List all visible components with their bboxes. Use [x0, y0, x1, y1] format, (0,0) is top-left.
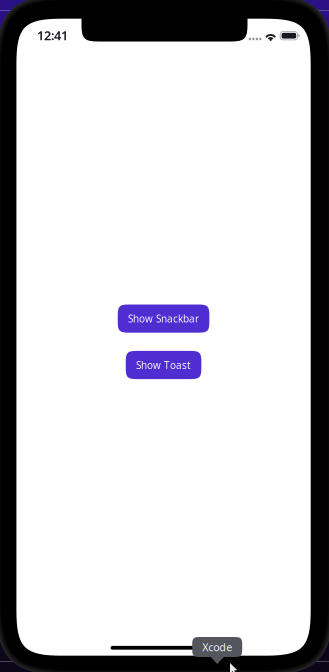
staticText: Show Snackbar	[128, 312, 199, 325]
staticText: 12:41	[37, 27, 68, 44]
staticText: Show Toast	[136, 358, 191, 372]
staticText: Xcode	[202, 640, 232, 654]
button[interactable]: Show Toast	[126, 351, 201, 379]
button[interactable]: Show Snackbar	[118, 304, 209, 333]
